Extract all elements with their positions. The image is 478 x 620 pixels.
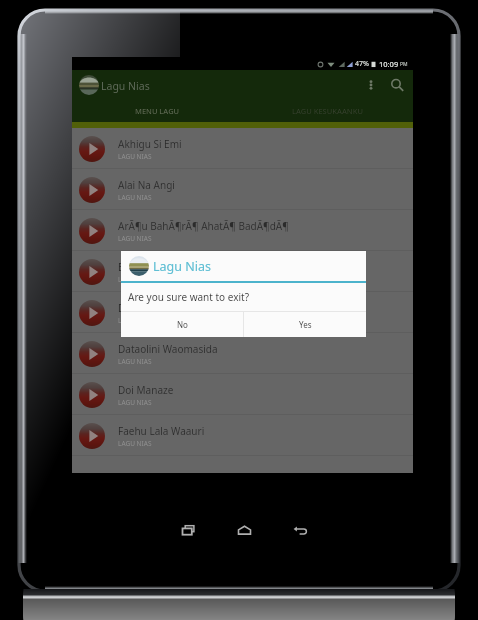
staticText: Faehu Lala Waauri bbox=[118, 424, 205, 438]
staticText: LAGU NIAS bbox=[118, 275, 152, 284]
button[interactable]: Alai Na Angi bbox=[72, 169, 413, 210]
button[interactable]: Yes bbox=[244, 312, 366, 337]
button[interactable]: Dali DÃ¶dÃ¶gu bbox=[72, 292, 413, 333]
staticText: No bbox=[177, 319, 188, 330]
button[interactable]: LAGU KESUKAANKU bbox=[242, 100, 413, 122]
button[interactable]: BÃ¶wÃ¶ Ma'ana bbox=[72, 251, 413, 292]
staticText: MENU LAGU bbox=[135, 106, 180, 116]
staticText: 10:09 bbox=[379, 59, 399, 69]
staticText: BÃ¶wÃ¶ Ma'ana bbox=[118, 260, 195, 274]
staticText: Lagu Nias bbox=[153, 258, 211, 275]
button[interactable]: ArÃ¶u BahÃ¶rÃ¶ AhatÃ¶ BadÃ¶dÃ¶ bbox=[72, 210, 413, 251]
button[interactable]: Recents bbox=[172, 514, 204, 546]
button[interactable]: Home bbox=[228, 514, 260, 546]
button[interactable]: MENU LAGU bbox=[72, 100, 242, 122]
button[interactable]: Dataolini Waomasida bbox=[72, 333, 413, 374]
staticText: LAGU NIAS bbox=[118, 398, 152, 407]
button[interactable]: More options bbox=[360, 74, 382, 96]
button[interactable]: Doi Manaze bbox=[72, 374, 413, 415]
staticText: Yes bbox=[299, 319, 312, 330]
staticText: Alai Na Angi bbox=[118, 178, 175, 192]
button[interactable]: Back bbox=[284, 514, 316, 546]
staticText: 47% bbox=[355, 59, 369, 69]
button[interactable]: No bbox=[121, 312, 243, 337]
staticText: LAGU NIAS bbox=[118, 316, 152, 325]
staticText: Akhigu Si Emi bbox=[118, 137, 182, 151]
staticText: Dataolini Waomasida bbox=[118, 342, 218, 356]
button[interactable]: Akhigu Si Emi bbox=[72, 128, 413, 169]
staticText: Dali DÃ¶dÃ¶gu bbox=[118, 301, 191, 315]
staticText: PM bbox=[400, 61, 408, 68]
staticText: LAGU NIAS bbox=[118, 439, 152, 448]
button[interactable]: Search bbox=[386, 74, 408, 96]
staticText: LAGU KESUKAANKU bbox=[292, 106, 363, 116]
staticText: Doi Manaze bbox=[118, 383, 174, 397]
staticText: ArÃ¶u BahÃ¶rÃ¶ AhatÃ¶ BadÃ¶dÃ¶ bbox=[118, 219, 289, 233]
staticText: Are you sure want to exit? bbox=[128, 290, 250, 304]
button[interactable]: Faehu Lala Waauri bbox=[72, 415, 413, 456]
staticText: LAGU NIAS bbox=[118, 193, 152, 202]
staticText: LAGU NIAS bbox=[118, 152, 152, 161]
staticText: LAGU NIAS bbox=[118, 357, 152, 366]
staticText: LAGU NIAS bbox=[118, 234, 152, 243]
staticText: Lagu Nias bbox=[101, 79, 150, 93]
